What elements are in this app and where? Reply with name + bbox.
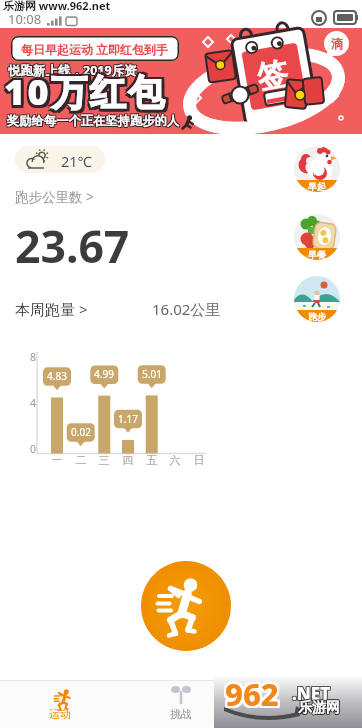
button[interactable]: 挑战 (151, 683, 211, 728)
staticText: 962 (223, 673, 277, 715)
staticText: .NET (292, 682, 331, 705)
staticText: .NET (293, 681, 332, 704)
staticText: 六 (165, 453, 185, 467)
staticText: 10万红包 (2, 67, 165, 116)
staticText: 乐游网 (299, 698, 341, 716)
staticText: 乐游网 (299, 700, 341, 718)
staticText: .NET (292, 683, 331, 706)
staticText: 4 (24, 396, 36, 410)
staticText: 早餐 (308, 249, 326, 260)
staticText: 奖励给每一个正在坚持跑步的人 (7, 112, 180, 127)
staticText: 乐游网 (299, 699, 341, 717)
staticText: 跑步公里数 > (15, 188, 94, 206)
staticText: 乐游网 (297, 699, 339, 717)
staticText: 奖励给每一个正在坚持跑步的人 (7, 113, 180, 128)
staticText: 10万红包 (4, 67, 167, 116)
button[interactable]: 早起 (294, 146, 340, 192)
staticText: 二 (71, 453, 91, 467)
staticText: .NET (293, 683, 332, 706)
staticText: 5.01 (138, 367, 166, 381)
button[interactable] (141, 561, 231, 651)
staticText: 悦跑新上线，2019斥资 (7, 61, 136, 78)
staticText: 悦跑新上线，2019斥资 (8, 62, 137, 79)
staticText: .NET (292, 681, 331, 704)
staticText: 悦跑新上线，2019斥资 (9, 63, 138, 80)
staticText: 日 (189, 453, 209, 467)
staticText: 23.67 (15, 215, 130, 276)
staticText: 16.02公里 (152, 299, 221, 319)
staticText: 悦跑新上线，2019斥资 (7, 62, 136, 79)
staticText: 962 (227, 671, 281, 713)
button[interactable]: 跑步 (294, 276, 340, 322)
staticText: 五 (142, 453, 162, 467)
staticText: .NET (291, 681, 330, 704)
staticText: 10:08 (8, 10, 42, 28)
staticText: .NET (293, 682, 332, 705)
staticText: 962 (225, 673, 279, 715)
staticText: 10万红包 (7, 67, 170, 116)
staticText: 10万红包 (2, 70, 165, 119)
button[interactable]: 本周跑量 > (15, 299, 245, 321)
staticText: 21℃ (61, 151, 93, 171)
staticText: 奖励给每一个正在坚持跑步的人 (6, 113, 179, 128)
staticText: 奖励给每一个正在坚持跑步的人 (6, 112, 179, 127)
staticText: 4.99 (90, 367, 118, 381)
staticText: 0 (24, 442, 36, 456)
staticText: 10万红包 (7, 70, 170, 119)
staticText: 4.83 (43, 369, 71, 383)
staticText: 乐游网 (298, 700, 340, 718)
staticText: 乐游网 www.962.net (3, 0, 111, 13)
button[interactable]: 21℃ (15, 146, 105, 173)
staticText: 10万红包 (4, 65, 167, 114)
staticText: 滴 (331, 36, 343, 51)
staticText: 奖励给每一个正在坚持跑步的人 (8, 113, 181, 128)
staticText: 962 (227, 673, 281, 715)
staticText: 奖励给每一个正在坚持跑步的人 (8, 112, 181, 127)
staticText: 10万红包 (7, 65, 170, 114)
staticText: 8 (24, 350, 36, 364)
staticText: 962 (225, 675, 279, 717)
staticText: 挑战 (170, 707, 192, 721)
staticText: 一 (47, 453, 67, 467)
staticText: 奖励给每一个正在坚持跑步的人 (8, 114, 181, 129)
staticText: 悦跑新上线，2019斥资 (8, 63, 137, 80)
staticText: 962 (223, 675, 277, 717)
staticText: 奖励给每一个正在坚持跑步的人 (7, 114, 180, 129)
button[interactable]: 签 (0, 28, 362, 134)
staticText: 乐游网 (298, 699, 340, 717)
staticText: 早起 (308, 181, 326, 192)
button[interactable]: 早餐 (294, 214, 340, 260)
staticText: .NET (291, 683, 330, 706)
staticText: 悦跑新上线，2019斥资 (8, 61, 137, 78)
staticText: 10万红包 (2, 65, 165, 114)
staticText: 每日早起运动 立即红包到手 (21, 41, 169, 57)
staticText: 1.17 (114, 412, 142, 426)
staticText: 0.02 (67, 425, 95, 439)
staticText: 跑步 (308, 311, 326, 322)
staticText: 悦跑新上线，2019斥资 (7, 63, 136, 80)
staticText: 乐游网 (297, 700, 339, 718)
staticText: 奖励给每一个正在坚持跑步的人 (6, 114, 179, 129)
staticText: 962 (225, 671, 279, 713)
button[interactable]: 运动 (30, 683, 90, 728)
staticText: 悦跑新上线，2019斥资 (9, 62, 138, 79)
staticText: 运动 (49, 707, 71, 721)
staticText: 本周跑量 > (15, 299, 88, 319)
staticText: 10万红包 (4, 70, 167, 119)
staticText: 乐游网 (298, 698, 340, 716)
staticText: 乐游网 (297, 698, 339, 716)
staticText: 悦跑新上线，2019斥资 (9, 61, 138, 78)
staticText: 签 (254, 54, 291, 97)
staticText: 962 (223, 671, 277, 713)
staticText: .NET (291, 682, 330, 705)
staticText: 四 (118, 453, 138, 467)
button[interactable]: 跑步公里数 > (15, 188, 125, 208)
staticText: 962 (227, 675, 281, 717)
staticText: 三 (94, 453, 114, 467)
